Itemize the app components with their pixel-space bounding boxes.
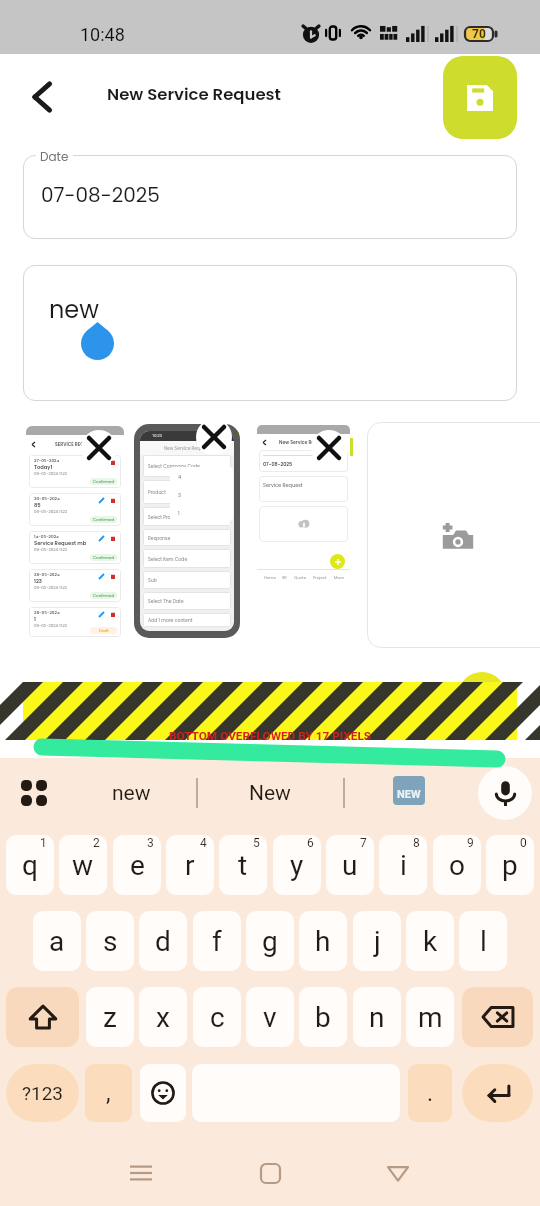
button[interactable]: ?123 [6,1064,79,1122]
staticText: b [315,1001,331,1034]
staticText: z [103,1001,117,1034]
staticText: y [290,849,304,882]
button[interactable]: Save [443,56,517,139]
button[interactable]: r [166,835,214,895]
staticText: s [103,925,118,958]
button[interactable]: Remove image [81,430,117,466]
staticText: new [49,293,99,327]
button[interactable]: e [113,835,161,895]
staticText: 1 [40,836,47,850]
button[interactable]: y [273,835,321,895]
button[interactable]: w [59,835,107,895]
staticText: 2 [93,836,100,850]
button[interactable]: u [326,835,374,895]
staticText: SR [282,575,287,581]
staticText: Confirmed [93,479,115,485]
staticText: 10:23 [152,433,162,438]
staticText: 27-05-2024 [34,458,60,464]
button[interactable]: Add photo [367,422,540,648]
button[interactable]: Emoji [140,1064,186,1122]
button[interactable]: Remove image [196,419,232,455]
staticText: Date [40,148,69,165]
button[interactable]: Back [20,75,64,119]
staticText: m [418,1001,443,1034]
staticText: g [262,925,278,958]
staticText: Home [264,575,276,581]
staticText: 09-05-2024 11:22 [34,509,68,515]
button[interactable]: . [408,1064,452,1122]
button[interactable]: new [23,265,517,401]
staticText: 1 [178,510,180,517]
button[interactable]: q [6,835,54,895]
button[interactable]: c [193,987,241,1047]
staticText: 10:48 [80,24,125,45]
staticText: . [427,1080,434,1107]
button[interactable]: Recents [114,1146,168,1200]
button[interactable]: 10:23 [134,424,240,638]
button[interactable]: New [210,758,330,828]
button[interactable]: k [406,911,454,971]
button[interactable]: h [299,911,347,971]
staticText: More [334,575,344,581]
button[interactable]: SERVICE REQUEST [26,426,124,637]
button[interactable]: n [353,987,401,1047]
staticText: 30-05-2024 [34,496,60,502]
button[interactable]: NEW [393,776,425,805]
button[interactable]: f [193,911,241,971]
staticText: 14-05-2024 [34,534,59,540]
staticText: SERVICE REQUEST [55,441,95,447]
button[interactable]: Enter [462,1064,533,1122]
staticText: d [155,925,171,958]
button[interactable]: Remove image [311,430,347,466]
button[interactable]: v [246,987,294,1047]
button[interactable]: d [139,911,187,971]
button[interactable]: Backspace [462,987,533,1047]
button[interactable]: o [433,835,481,895]
staticText: w [72,849,94,882]
button[interactable]: x [139,987,187,1047]
button[interactable]: z [86,987,134,1047]
staticText: i [400,849,407,882]
button[interactable]: , [85,1064,132,1122]
button[interactable]: new [71,758,191,828]
staticText: f [212,925,222,958]
button[interactable]: Back [371,1146,425,1200]
staticText: Confirmed [93,555,115,561]
button[interactable]: Voice input [478,766,532,820]
button[interactable]: Home [243,1146,297,1200]
button[interactable]: New Service Request [257,425,350,583]
staticText: 7 [360,836,367,850]
staticText: Quote [294,575,307,581]
button[interactable]: j [353,911,401,971]
staticText: new [112,781,151,806]
button[interactable]: s [86,911,134,971]
staticText: Today1 [34,464,53,471]
button[interactable]: i [379,835,427,895]
staticText: , [106,1080,111,1107]
button[interactable]: b [299,987,347,1047]
staticText: 28-05-2024 [34,572,60,578]
staticText: a [49,925,65,958]
staticText: Select The Date [148,598,184,604]
staticText: Service Request [263,482,303,489]
button[interactable]: l [459,911,507,971]
staticText: 1 [34,616,36,623]
staticText: n [369,1001,385,1034]
button[interactable]: Shift [6,987,79,1047]
button[interactable]: g [246,911,294,971]
staticText: Response [148,535,171,541]
staticText: Select Item Code [148,556,188,562]
staticText: 3 [178,492,181,499]
staticText: o [449,849,465,882]
button[interactable]: t [219,835,267,895]
button[interactable]: 07-08-2025 [23,155,517,239]
staticText: 09-05-2024 11:22 [34,585,68,591]
button[interactable]: a [33,911,81,971]
button[interactable]: Clipboard [10,758,58,828]
button[interactable]: m [406,987,454,1047]
staticText: 3 [147,836,154,850]
staticText: Confirmed [93,517,115,523]
staticText: j [374,925,381,958]
button[interactable]: p [486,835,534,895]
